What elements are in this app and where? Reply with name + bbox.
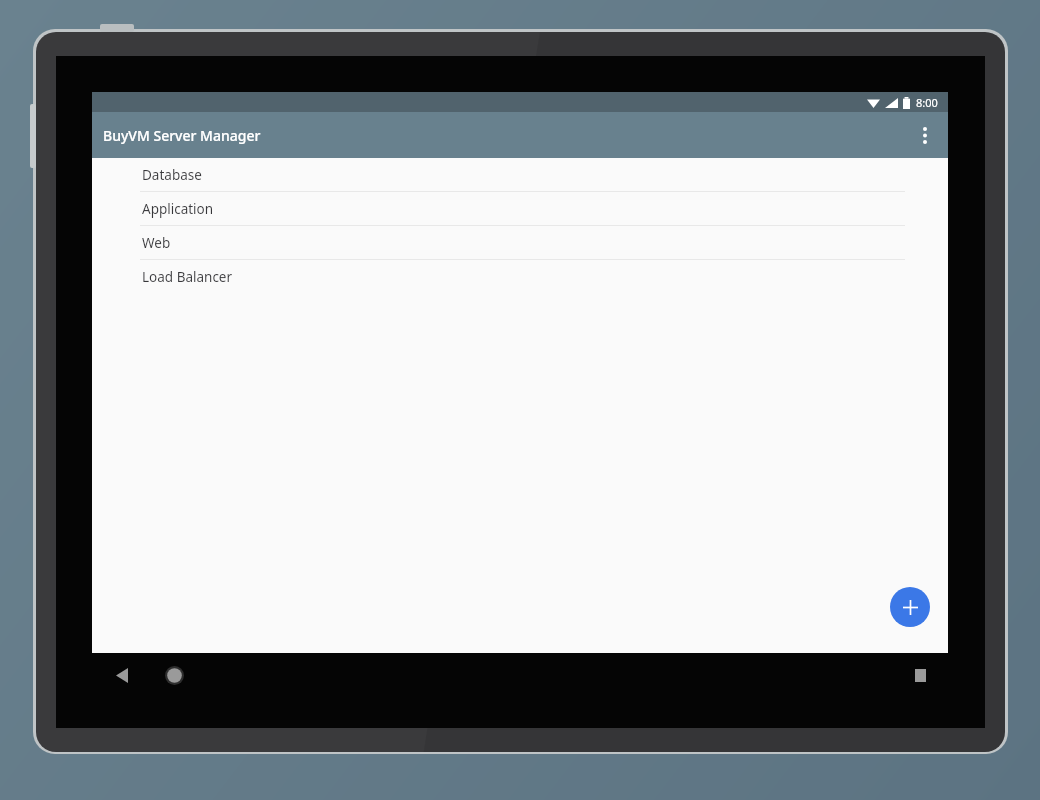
button[interactable]: Recent apps (898, 653, 942, 697)
button[interactable]: Database (92, 158, 948, 192)
staticText: BuyVM Server Manager (103, 126, 261, 145)
staticText: Web (142, 234, 171, 252)
button[interactable]: Back (100, 653, 144, 697)
staticText: Database (142, 166, 202, 184)
button[interactable]: More options (902, 112, 948, 158)
button[interactable]: Load Balancer (92, 260, 948, 294)
staticText: Application (142, 200, 214, 218)
button[interactable]: Add server (890, 587, 930, 627)
staticText: Load Balancer (142, 268, 233, 286)
button[interactable]: Home (152, 653, 196, 697)
button[interactable]: Application (92, 192, 948, 226)
staticText: 8:00 (916, 95, 938, 110)
button[interactable]: Web (92, 226, 948, 260)
